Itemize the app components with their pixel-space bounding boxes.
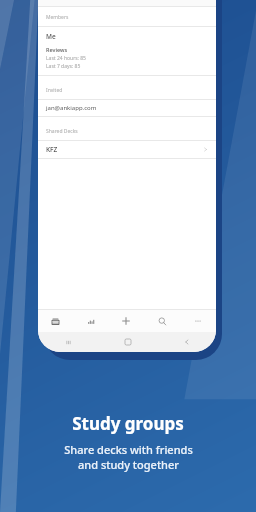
button[interactable]: Search: [144, 310, 180, 332]
staticText: Share decks with friends and study toget…: [64, 442, 193, 472]
button[interactable]: KFZ: [38, 141, 216, 158]
staticText: Last 24 hours: 85: [46, 55, 86, 62]
staticText: Shared Decks: [46, 128, 78, 135]
staticText: jan@ankiapp.com: [46, 104, 97, 112]
staticText: Study groups: [72, 412, 184, 435]
staticText: Reviews: [46, 46, 68, 53]
button[interactable]: Back: [157, 332, 216, 352]
staticText: Invited: [46, 87, 63, 94]
staticText: Me: [46, 32, 56, 41]
staticText: Last 7 days: 85: [46, 63, 81, 70]
staticText: KFZ: [46, 145, 58, 154]
button[interactable]: Decks: [38, 310, 73, 332]
button[interactable]: Recent apps: [38, 332, 98, 352]
button[interactable]: Home: [98, 332, 157, 352]
staticText: Members: [46, 14, 69, 21]
button[interactable]: Add: [108, 310, 144, 332]
button[interactable]: jan@ankiapp.com: [38, 100, 216, 116]
button[interactable]: Me: [38, 27, 216, 75]
button[interactable]: Statistics: [73, 310, 108, 332]
button[interactable]: More options: [180, 310, 216, 332]
